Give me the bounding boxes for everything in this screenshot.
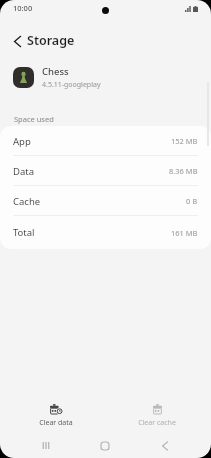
staticText: 8.36 MB (169, 166, 198, 176)
button[interactable]: Clear cache (106, 393, 208, 433)
button[interactable]: Chess (0, 54, 211, 94)
staticText: Space used (14, 114, 54, 124)
button[interactable]: Home (75, 433, 135, 458)
staticText: Clear data (39, 418, 73, 428)
button[interactable]: Back (5, 29, 29, 53)
button[interactable]: Clear data (5, 393, 106, 433)
staticText: 161 MB (171, 228, 198, 238)
staticText: 0 B (186, 196, 198, 206)
button[interactable]: Recents (16, 433, 75, 458)
staticText: Clear cache (138, 418, 176, 428)
staticText: Data (13, 165, 35, 178)
button[interactable]: Data (0, 156, 211, 186)
button[interactable]: Cache (0, 186, 211, 216)
staticText: Storage (27, 32, 75, 49)
staticText: Cache (13, 195, 41, 208)
button[interactable]: App (0, 126, 211, 156)
staticText: Chess (42, 65, 69, 78)
button[interactable]: Back (135, 433, 195, 458)
button[interactable]: Total (0, 216, 211, 249)
staticText: App (13, 135, 31, 148)
staticText: 4.5.11-googleplay (42, 80, 101, 90)
staticText: 152 MB (171, 136, 198, 146)
staticText: 10:00 (13, 3, 33, 13)
staticText: Total (13, 226, 35, 239)
